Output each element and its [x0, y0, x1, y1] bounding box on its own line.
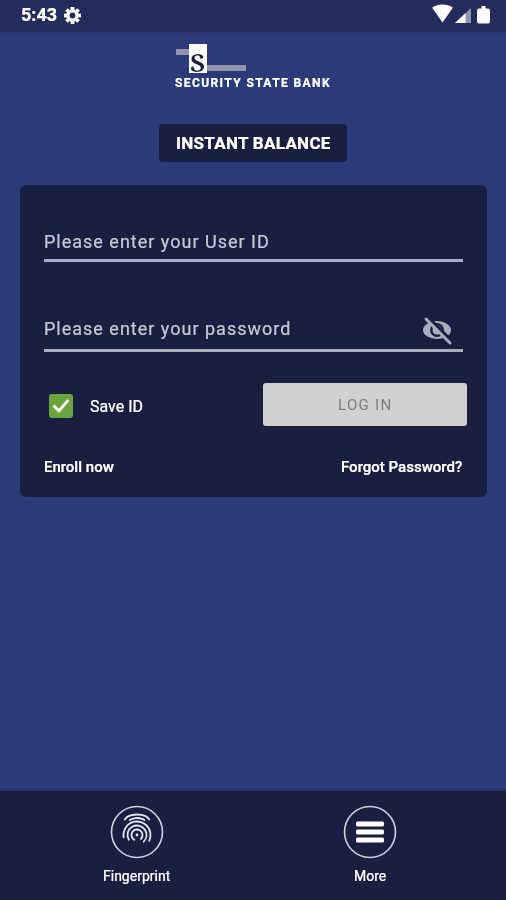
button[interactable]: Fingerprint: [77, 806, 197, 884]
staticText: SECURITY STATE BANK: [0, 76, 506, 90]
staticText: S: [190, 44, 206, 73]
button[interactable]: More: [310, 806, 430, 884]
staticText: More: [354, 868, 387, 884]
button[interactable]: LOG IN: [263, 383, 467, 426]
staticText: Save ID: [90, 397, 144, 416]
staticText: INSTANT BALANCE: [176, 133, 331, 153]
button[interactable]: [420, 315, 454, 345]
staticText: 5:43: [21, 4, 58, 25]
staticText: LOG IN: [338, 396, 393, 414]
button[interactable]: Enroll now: [44, 458, 114, 476]
staticText: Please enter your password: [44, 318, 292, 339]
button[interactable]: [49, 394, 73, 418]
button[interactable]: INSTANT BALANCE: [159, 124, 347, 162]
staticText: Please enter your User ID: [44, 231, 270, 252]
button[interactable]: Forgot Password?: [341, 458, 463, 476]
staticText: Fingerprint: [103, 868, 171, 884]
